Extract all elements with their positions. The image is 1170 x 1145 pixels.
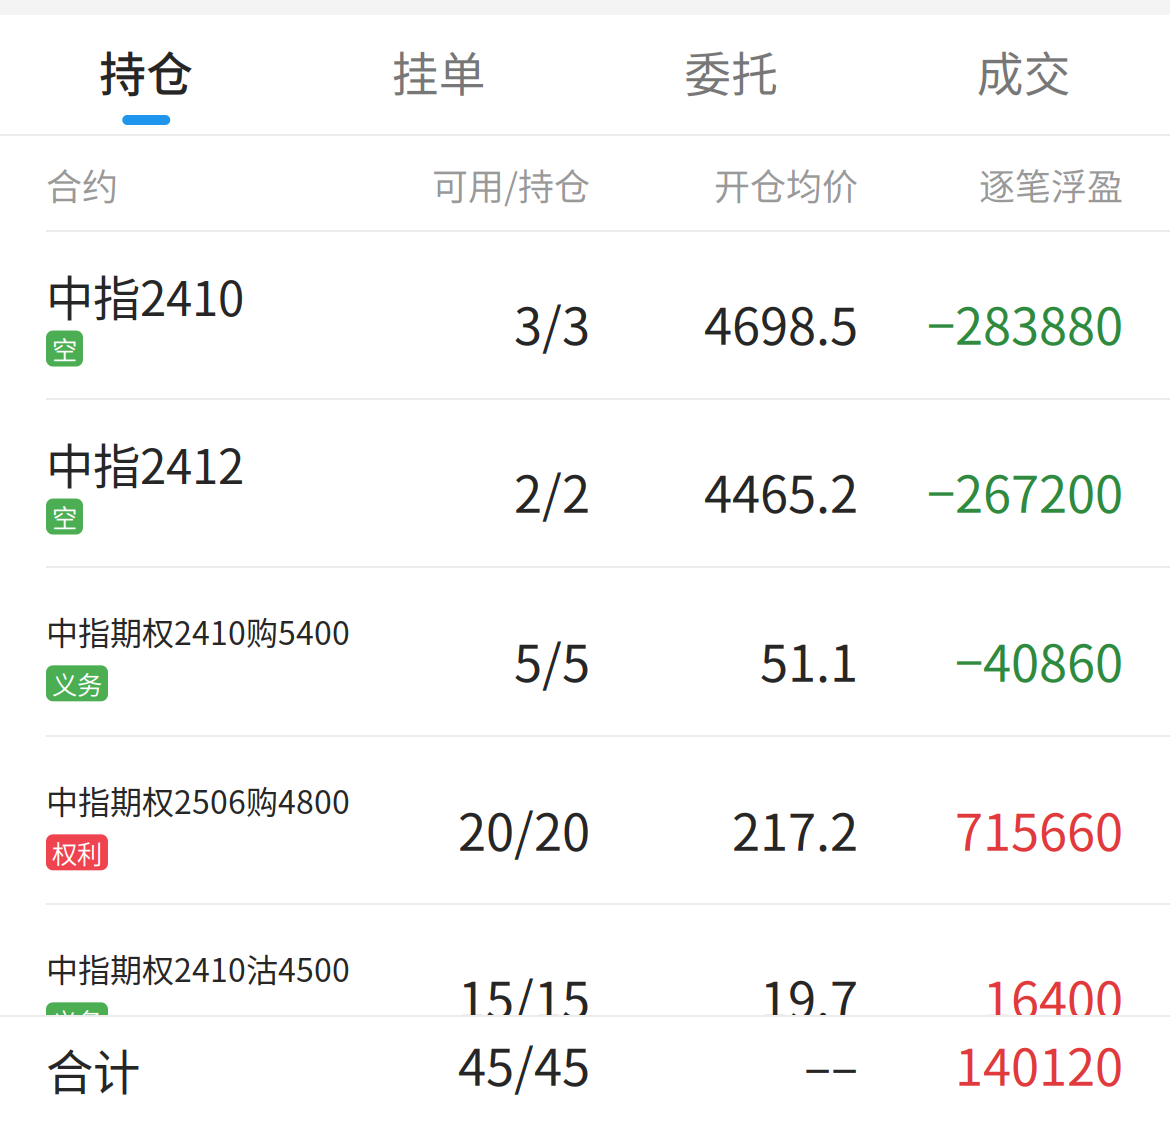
staticText: 20/20 (458, 792, 590, 865)
staticText: 义务 (52, 1002, 102, 1039)
staticText: 挂单 (392, 37, 486, 105)
button[interactable]: 中指2412 (0, 400, 1170, 566)
staticText: 中指期权2506购4800 (46, 777, 350, 823)
staticText: 15/15 (458, 960, 590, 1033)
staticText: 中指2410 (46, 261, 244, 329)
staticText: 合约 (46, 158, 118, 210)
staticText: 中指期权2410沽4500 (46, 945, 350, 991)
button[interactable]: 中指期权2410购5400 (0, 568, 1170, 735)
staticText: –– (804, 1027, 858, 1100)
staticText: 4698.5 (704, 286, 858, 359)
button[interactable]: 成交 (877, 15, 1170, 134)
staticText: 开仓均价 (714, 158, 858, 210)
button[interactable]: 委托 (585, 15, 877, 134)
staticText: −283880 (927, 286, 1123, 359)
staticText: 4465.2 (704, 454, 858, 527)
staticText: 中指2412 (46, 429, 244, 497)
staticText: 义务 (52, 665, 102, 702)
staticText: 中指期权2410购5400 (46, 608, 350, 654)
staticText: 2/2 (514, 454, 590, 527)
staticText: 51.1 (760, 623, 858, 696)
button[interactable]: 中指2410 (0, 232, 1170, 398)
staticText: 权利 (52, 834, 102, 871)
staticText: 5/5 (514, 623, 590, 696)
staticText: −267200 (927, 454, 1123, 527)
staticText: 16400 (983, 960, 1123, 1033)
staticText: 140120 (955, 1027, 1123, 1100)
staticText: 委托 (684, 37, 778, 105)
staticText: 45/45 (458, 1027, 590, 1100)
staticText: 持仓 (99, 37, 193, 105)
staticText: 3/3 (514, 286, 590, 359)
button[interactable]: 持仓 (0, 15, 292, 134)
staticText: 可用/持仓 (432, 158, 590, 210)
staticText: −40860 (955, 623, 1123, 696)
staticText: 逐笔浮盈 (979, 158, 1123, 210)
staticText: 19.7 (760, 960, 858, 1033)
button[interactable]: 挂单 (292, 15, 585, 134)
staticText: 217.2 (732, 792, 858, 865)
staticText: 合计 (46, 1035, 140, 1103)
staticText: 空 (52, 330, 77, 367)
staticText: 715660 (955, 792, 1123, 865)
staticText: 成交 (977, 37, 1071, 105)
button[interactable]: 中指期权2410沽4500 (0, 905, 1170, 1071)
staticText: 空 (52, 498, 77, 535)
button[interactable]: 中指期权2506购4800 (0, 737, 1170, 903)
